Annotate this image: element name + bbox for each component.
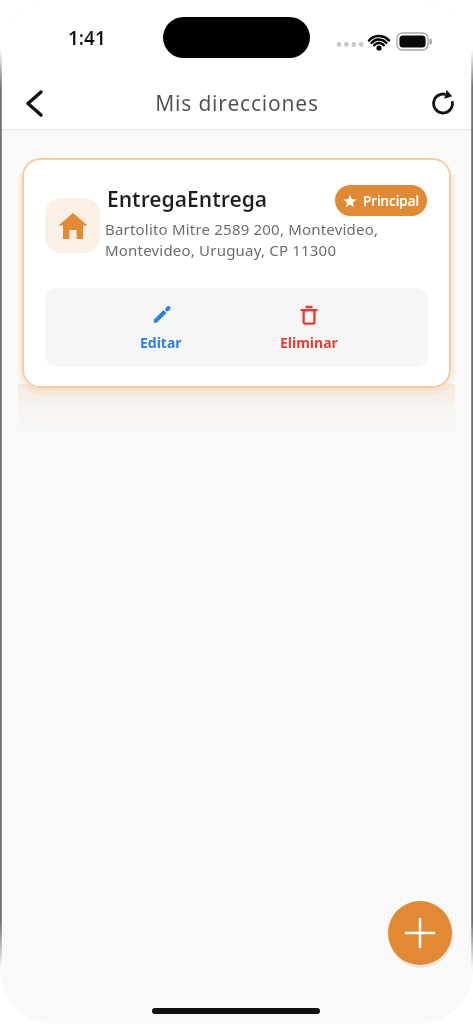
staticText: Eliminar (280, 333, 338, 352)
staticText: Principal (363, 192, 420, 210)
staticText: Mis direcciones (155, 89, 319, 118)
staticText: Montevideo, Uruguay, CP 11300 (105, 240, 337, 260)
button[interactable]: Principal (335, 185, 427, 216)
button[interactable] (388, 901, 452, 965)
staticText: EntregaEntrega (107, 185, 268, 214)
button[interactable]: Eliminar (245, 296, 373, 360)
button[interactable] (424, 84, 462, 122)
staticText: Editar (140, 333, 182, 352)
staticText: Bartolito Mitre 2589 200, Montevideo, (105, 219, 379, 239)
button[interactable]: Editar (101, 296, 221, 360)
button[interactable] (16, 84, 54, 122)
staticText: 1:41 (68, 25, 106, 51)
